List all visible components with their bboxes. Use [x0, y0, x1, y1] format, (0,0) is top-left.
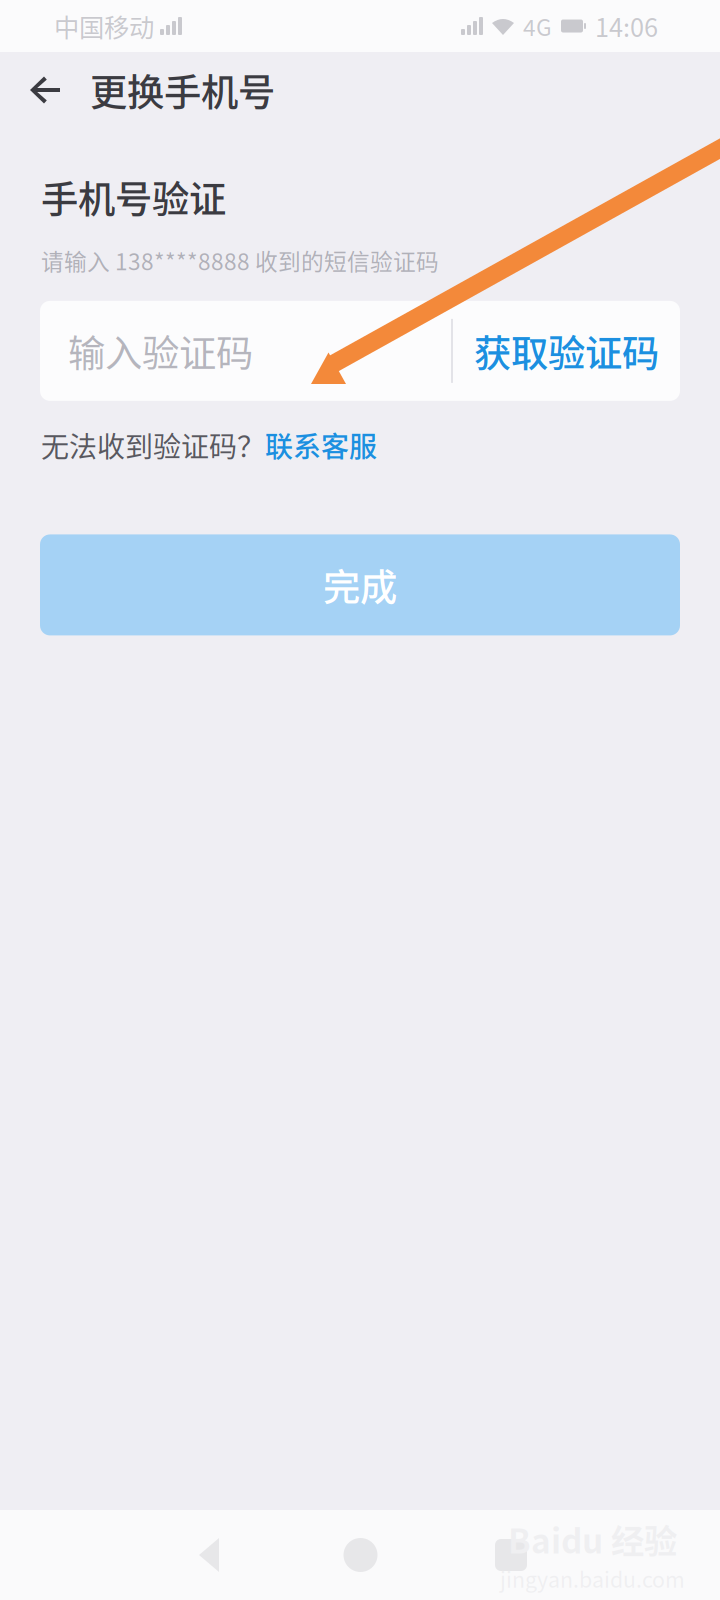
button[interactable]: Back [0, 52, 90, 128]
button[interactable]: 联系客服 [265, 425, 377, 465]
button[interactable]: 完成 [40, 534, 680, 635]
staticText: 完成 [323, 558, 397, 612]
staticText: 手机号验证 [41, 170, 226, 224]
button[interactable]: Recent apps [436, 1510, 586, 1600]
staticText: 14:06 [595, 8, 658, 44]
button[interactable]: Back [142, 1510, 276, 1600]
staticText: 请输入 138****8888 收到的短信验证码 [41, 244, 439, 277]
staticText: Baidu 经验 [508, 1515, 677, 1563]
button[interactable]: 获取验证码 [453, 301, 680, 401]
staticText: 4G [523, 10, 552, 42]
staticText: 输入验证码 [68, 324, 253, 378]
staticText: 无法收到验证码？ [41, 425, 265, 465]
staticText: 联系客服 [265, 425, 377, 465]
staticText: 中国移动 [54, 8, 154, 44]
staticText: 获取验证码 [474, 324, 659, 378]
button[interactable]: Home [285, 1510, 436, 1600]
staticText: 更换手机号 [90, 63, 275, 117]
staticText: jingyan.baidu.com [500, 1563, 685, 1594]
